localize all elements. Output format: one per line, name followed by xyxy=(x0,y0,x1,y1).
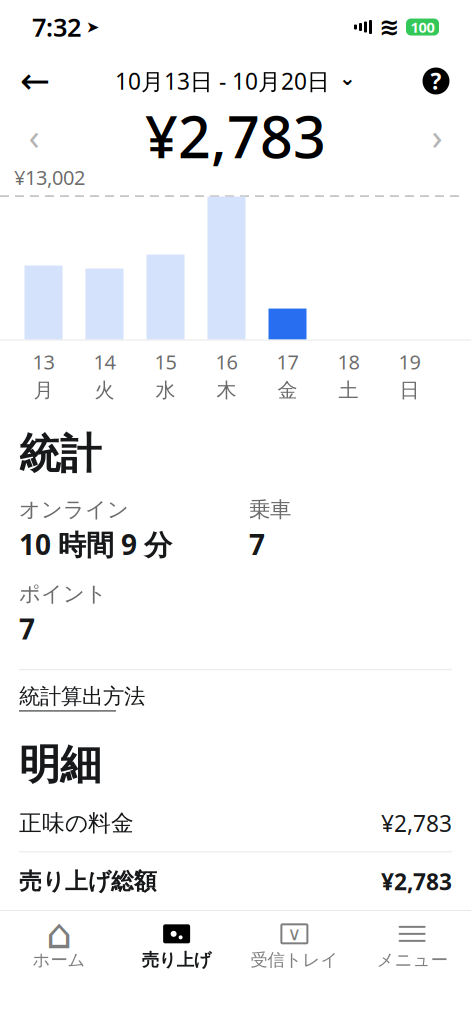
staticText: 7:32 xyxy=(32,10,81,44)
staticText: 7 xyxy=(249,526,265,563)
staticText: 統計算出方法 xyxy=(19,683,145,709)
staticText: 火 xyxy=(94,378,114,403)
staticText: 13 xyxy=(32,349,54,375)
staticText: 売り上げ総額 xyxy=(19,867,157,895)
button[interactable]: 10月13日 - 10月20日 xyxy=(107,58,364,104)
staticText: ? xyxy=(430,66,441,96)
staticText: ⌄ xyxy=(339,67,356,89)
staticText: ‹ xyxy=(28,112,39,160)
staticText: 日 xyxy=(399,378,419,403)
button[interactable]: Next week xyxy=(415,114,459,158)
button[interactable]: Help xyxy=(413,58,459,104)
button[interactable]: ∨ xyxy=(235,921,353,973)
staticText: ⌂ xyxy=(46,910,72,957)
staticText: ∨ xyxy=(287,923,301,944)
staticText: 10月13日 - 10月20日 xyxy=(115,66,330,96)
staticText: 7 xyxy=(19,610,35,647)
staticText: 正味の料金 xyxy=(19,809,134,837)
staticText: 16 xyxy=(215,349,237,375)
staticText: ➤ xyxy=(86,18,99,36)
staticText: 月 xyxy=(33,378,53,403)
button[interactable]: 売り上げ xyxy=(118,921,236,973)
staticText: 100 xyxy=(410,17,434,37)
staticText: 売り上げ xyxy=(142,949,212,971)
button[interactable]: 統計算出方法 xyxy=(19,670,145,715)
staticText: › xyxy=(431,112,442,160)
staticText: 金 xyxy=(277,378,297,403)
staticText: ¥2,783 xyxy=(381,808,452,838)
button[interactable]: Previous week xyxy=(12,114,56,158)
staticText: ホーム xyxy=(32,949,85,971)
button[interactable]: Back xyxy=(12,58,58,104)
staticText: ¥13,002 xyxy=(14,164,85,191)
staticText: 水 xyxy=(155,378,175,403)
button[interactable]: ⌂ xyxy=(0,921,118,973)
staticText: ← xyxy=(20,61,50,101)
staticText: 乗車 xyxy=(249,496,291,523)
staticText: 統計 xyxy=(19,429,101,479)
staticText: ポイント xyxy=(19,581,107,607)
staticText: 明細 xyxy=(19,739,101,790)
staticText: 14 xyxy=(93,349,115,375)
staticText: メニュー xyxy=(377,949,448,971)
staticText: 売り上げ状況を確認する xyxy=(109,927,362,955)
staticText: ¥2,783 xyxy=(381,866,452,896)
staticText: 17 xyxy=(276,349,298,375)
staticText: 19 xyxy=(398,349,420,375)
staticText: 木 xyxy=(216,378,236,403)
staticText: ≋ xyxy=(379,13,399,41)
staticText: 10 時間 9 分 xyxy=(19,526,172,563)
staticText: オンライン xyxy=(19,496,129,523)
staticText: 土 xyxy=(338,378,358,403)
button[interactable]: 売り上げ状況を確認する xyxy=(20,914,451,968)
button[interactable]: メニュー xyxy=(353,921,471,973)
staticText: 18 xyxy=(337,349,359,375)
staticText: ¥2,783 xyxy=(145,98,326,174)
staticText: 15 xyxy=(154,349,176,375)
staticText: 受信トレイ xyxy=(250,949,338,971)
